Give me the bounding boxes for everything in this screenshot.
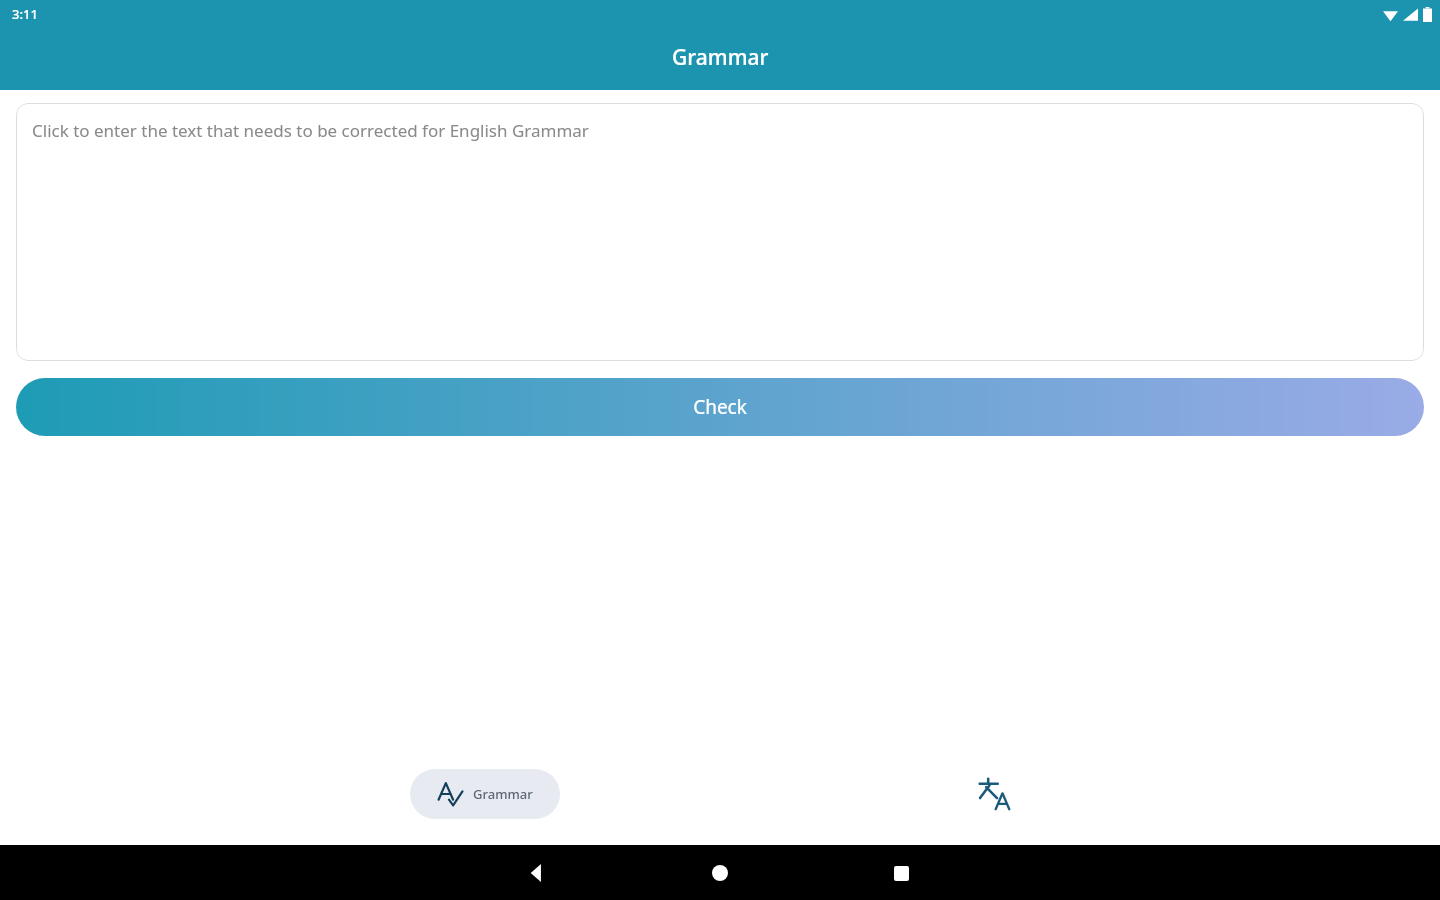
staticText: 3:11 [12,5,38,23]
staticText: Click to enter the text that needs to be… [32,119,589,142]
staticText: Grammar [672,43,769,72]
button[interactable]: Check [16,378,1424,436]
button[interactable]: Recent apps [883,855,919,891]
button[interactable]: Home [702,855,738,891]
staticText: Grammar [473,785,533,803]
button[interactable]: Click to enter the text that needs to be… [16,103,1424,361]
button[interactable]: Translate [963,769,1027,819]
staticText: Check [693,394,747,420]
button[interactable]: Grammar [410,769,560,819]
button[interactable]: Back [519,855,555,891]
